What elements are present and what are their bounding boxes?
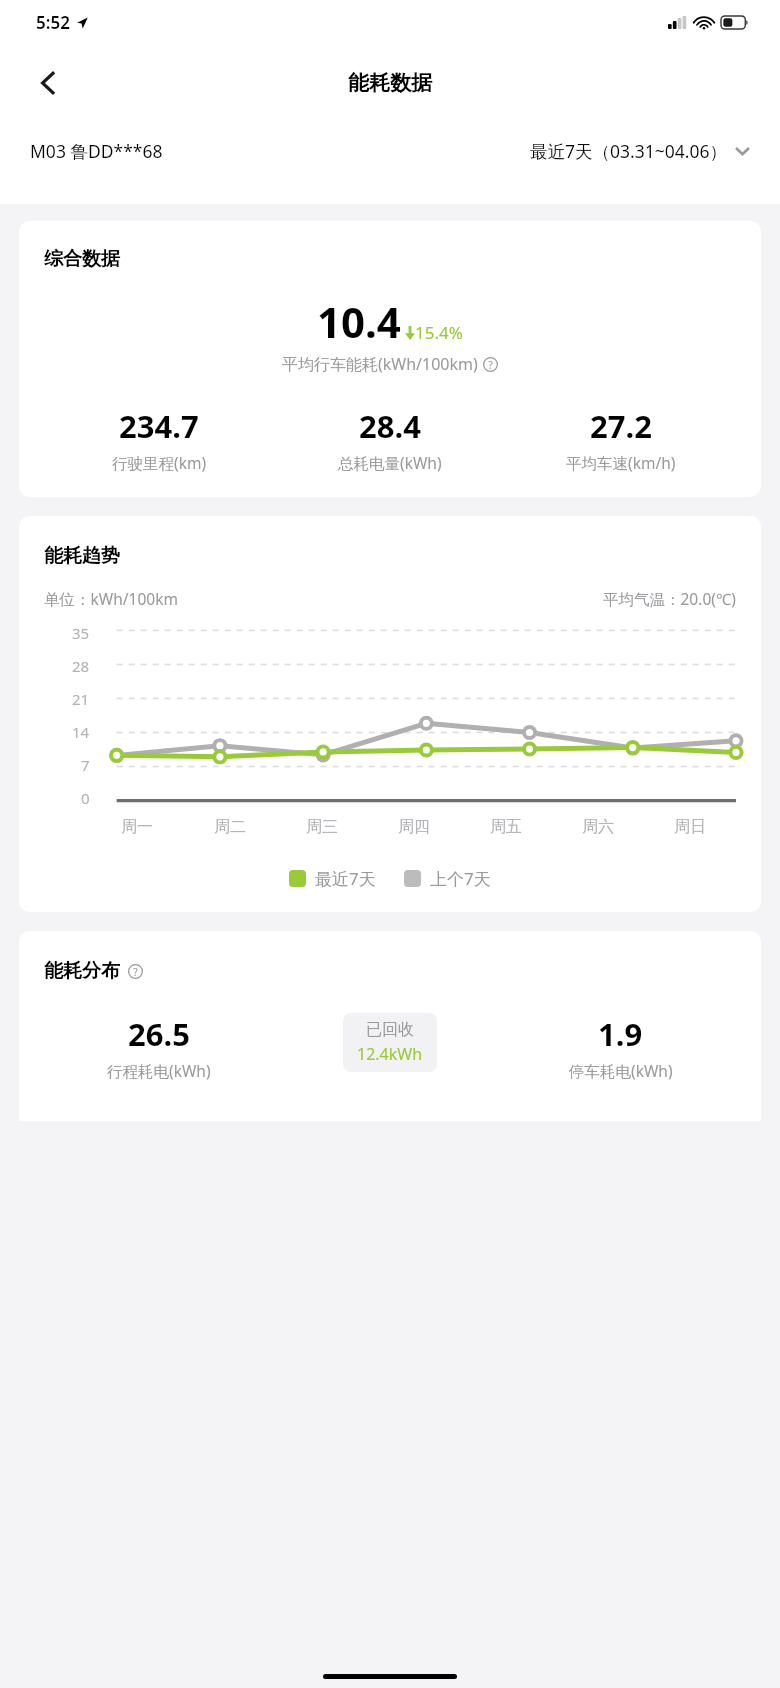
staticText: 能耗分布: [44, 959, 120, 983]
staticText: 5:52: [36, 11, 70, 34]
button[interactable]: 上个7天: [404, 867, 491, 890]
staticText: ?: [133, 965, 138, 979]
staticText: 28: [72, 656, 90, 676]
staticText: 总耗电量(kWh): [338, 452, 442, 473]
staticText: 26.5: [128, 1013, 190, 1055]
staticText: 周五: [490, 817, 522, 837]
staticText: 能耗趋势: [44, 544, 120, 568]
button[interactable]: 27.2: [505, 405, 736, 473]
button[interactable]: 26.5: [44, 1013, 274, 1081]
staticText: 7: [81, 755, 90, 775]
staticText: 能耗数据: [348, 70, 432, 96]
staticText: 周二: [214, 817, 246, 837]
staticText: 行驶里程(km): [112, 452, 207, 473]
staticText: 单位：kWh/100km: [44, 588, 178, 609]
staticText: 已回收: [366, 1020, 414, 1040]
staticText: 最近7天: [315, 867, 376, 890]
staticText: 14: [72, 722, 90, 742]
staticText: 上个7天: [430, 867, 491, 890]
button[interactable]: 综合数据: [19, 221, 761, 497]
staticText: 0: [81, 788, 90, 808]
staticText: 平均气温：20.0(℃): [603, 588, 736, 609]
staticText: 12.4kWh: [357, 1043, 423, 1065]
staticText: 234.7: [119, 405, 199, 447]
staticText: 平均行车能耗(kWh/100km): [282, 353, 478, 375]
staticText: 35: [72, 623, 90, 643]
button[interactable]: 234.7: [44, 405, 274, 473]
staticText: 28.4: [359, 405, 421, 447]
button[interactable]: 28.4: [274, 405, 505, 473]
staticText: 最近7天（03.31~04.06）: [530, 139, 727, 163]
staticText: ?: [488, 358, 493, 372]
staticText: 1.9: [598, 1013, 643, 1055]
button[interactable]: M03 鲁DD***68: [30, 139, 163, 163]
staticText: 周一: [121, 817, 153, 837]
staticText: 平均车速(km/h): [566, 452, 676, 473]
staticText: 周六: [582, 817, 614, 837]
staticText: 停车耗电(kWh): [569, 1060, 673, 1081]
staticText: 10.4: [317, 293, 401, 350]
button[interactable]: 最近7天: [289, 867, 376, 890]
staticText: 15.4%: [415, 321, 463, 344]
staticText: 综合数据: [44, 247, 120, 271]
staticText: 周三: [306, 817, 338, 837]
staticText: 27.2: [590, 405, 652, 447]
button[interactable]: Back: [22, 58, 72, 108]
staticText: 行程耗电(kWh): [107, 1060, 211, 1081]
staticText: 21: [72, 689, 90, 709]
staticText: 周日: [674, 817, 706, 837]
staticText: 周四: [398, 817, 430, 837]
button[interactable]: 1.9: [505, 1013, 736, 1081]
button[interactable]: 最近7天（03.31~04.06）: [530, 139, 750, 163]
